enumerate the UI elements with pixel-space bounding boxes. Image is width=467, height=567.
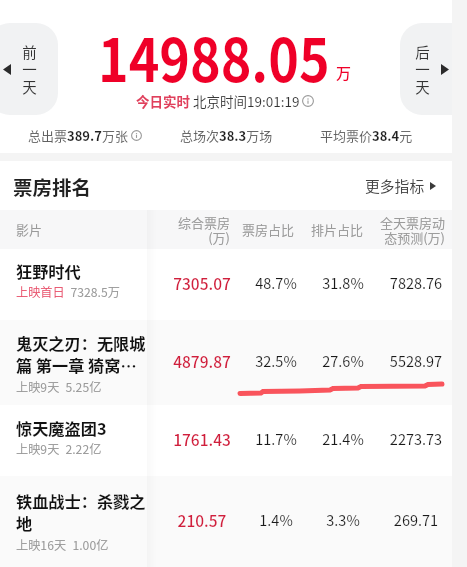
staticText: 总场次38.3万场 (180, 126, 273, 145)
staticText: 综合票房 (万) (174, 213, 230, 247)
staticText: 210.57 (147, 509, 257, 531)
button[interactable]: 惊天魔盗团3 (0, 405, 467, 476)
staticText: 27.6% (288, 350, 398, 371)
staticText: 2273.73 (361, 428, 467, 449)
staticText: 上映9天 (16, 440, 60, 458)
staticText: 更多指标 (365, 175, 425, 196)
staticText: 影片 (16, 220, 43, 239)
staticText: 铁血战士：杀戮之地 (16, 489, 149, 535)
staticText: 平均票价38.4元 (320, 126, 413, 145)
staticText: 48.7% (221, 272, 331, 293)
staticText: 32.5% (221, 350, 331, 371)
staticText: 4879.87 (147, 350, 257, 372)
staticText: 万 (336, 62, 352, 84)
staticText: 上映首日 (16, 283, 65, 301)
staticText: 上映9天 (16, 378, 60, 396)
staticText: 7828.76 (361, 272, 467, 293)
staticText: 后 一 天 (415, 41, 430, 98)
staticText: 1.4% (221, 509, 331, 530)
staticText: 上映16天 (16, 536, 67, 554)
staticText: 21.4% (288, 428, 398, 449)
staticText: 前 一 天 (22, 41, 37, 98)
staticText: 7328.5万 (65, 283, 120, 301)
button[interactable]: 狂野时代 (0, 249, 467, 320)
staticText: 2.22亿 (60, 440, 102, 458)
staticText: 全天票房动 态预测(万) (376, 213, 445, 247)
staticText: 票房占比 (242, 220, 294, 239)
staticText: 5.25亿 (60, 378, 102, 396)
button[interactable]: 铁血战士：杀戮之地 (0, 476, 467, 567)
staticText: 5528.97 (361, 350, 467, 371)
staticText: 1.00亿 (67, 536, 109, 554)
staticText: 总出票389.7万张 (28, 126, 128, 145)
staticText: 狂野时代 (16, 259, 81, 282)
button[interactable]: 前一天 (0, 23, 58, 115)
button[interactable]: 鬼灭之刃：无限城篇 第一章 猗窝… (0, 320, 467, 405)
staticText: 鬼灭之刃：无限城篇 第一章 猗窝… (16, 331, 149, 377)
staticText: 31.8% (288, 272, 398, 293)
staticText: 北京时间19:01:19 (190, 91, 300, 111)
staticText: 票房排名 (13, 172, 92, 200)
staticText: 7305.07 (147, 272, 257, 294)
staticText: 今日实时 (136, 91, 190, 111)
staticText: 3.3% (288, 509, 398, 530)
button[interactable]: 后一天 (400, 23, 467, 115)
staticText: 1761.43 (147, 428, 257, 450)
staticText: 11.7% (221, 428, 331, 449)
staticText: 14988.05 (98, 13, 330, 99)
button[interactable]: 更多指标 (365, 175, 436, 196)
staticText: 269.71 (361, 509, 467, 530)
staticText: 排片占比 (311, 220, 363, 239)
staticText: 惊天魔盗团3 (16, 416, 107, 439)
